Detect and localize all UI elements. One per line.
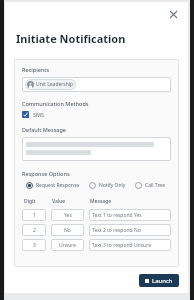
button[interactable]: Yes — [51, 209, 84, 221]
button[interactable] — [22, 137, 171, 161]
button[interactable]: No — [51, 224, 84, 236]
staticText: Launch — [152, 277, 173, 285]
staticText: Message — [90, 198, 112, 205]
button[interactable]: Text 3 to respond Unsure — [89, 239, 171, 251]
staticText: Yes — [64, 212, 72, 219]
button[interactable]: Request Response — [26, 182, 80, 189]
button[interactable]: 2 — [22, 224, 46, 236]
staticText: Text 3 to respond Unsure — [92, 242, 151, 249]
button[interactable]: Text 1 to respond Yes — [89, 209, 171, 221]
staticText: Notify Only — [99, 182, 126, 189]
button[interactable]: Unsure — [51, 239, 84, 251]
staticText: Value — [52, 198, 90, 205]
staticText: Request Response — [36, 182, 80, 189]
staticText: Unit Leadership — [36, 81, 74, 88]
button[interactable]: 1 — [22, 209, 46, 221]
staticText: Unsure — [59, 242, 77, 249]
button[interactable]: Unit Leadership — [22, 77, 171, 92]
staticText: 3 — [33, 242, 36, 249]
button[interactable]: SMS — [22, 111, 45, 118]
button[interactable]: Close — [166, 7, 180, 21]
staticText: 1 — [33, 212, 36, 219]
button[interactable]: Text 2 to respond No — [89, 224, 171, 236]
staticText: 2 — [33, 227, 36, 234]
staticText: No — [64, 227, 71, 234]
staticText: Digit — [24, 198, 52, 205]
staticText: Response Options — [22, 170, 70, 177]
staticText: SMS — [33, 111, 45, 118]
staticText: Text 2 to respond No — [92, 227, 141, 234]
staticText: Initiate Notification — [16, 31, 126, 46]
button[interactable]: Notify Only — [89, 182, 126, 189]
staticText: Default Message — [22, 126, 67, 133]
button[interactable]: 3 — [22, 239, 46, 251]
staticText: Recipients — [22, 66, 50, 73]
staticText: Communication Methods — [22, 100, 89, 107]
staticText: Text 1 to respond Yes — [92, 212, 142, 219]
button[interactable]: Launch — [139, 274, 179, 287]
staticText: Call Tree — [145, 182, 165, 189]
button[interactable]: Call Tree — [135, 182, 165, 189]
